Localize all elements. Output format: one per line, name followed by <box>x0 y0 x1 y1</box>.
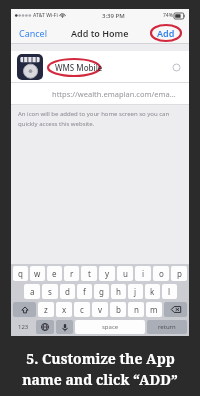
button[interactable]: d <box>60 284 75 299</box>
staticText: p <box>177 268 182 279</box>
button[interactable]: x <box>56 302 72 317</box>
button[interactable]: w <box>30 266 45 281</box>
button[interactable]: l <box>162 284 177 299</box>
staticText: n <box>134 304 139 315</box>
button[interactable]: return <box>147 320 187 334</box>
staticText: a <box>30 286 35 297</box>
button[interactable]: i <box>135 266 151 281</box>
button[interactable]: v <box>92 302 108 317</box>
button[interactable]: h <box>111 284 126 299</box>
button[interactable]: 123 <box>13 320 34 334</box>
staticText: s <box>48 286 52 297</box>
staticText: An icon will be added to your home scree… <box>18 110 170 118</box>
staticText: m <box>150 304 158 315</box>
button[interactable]: e <box>47 266 62 281</box>
button[interactable]: Shift <box>13 302 36 317</box>
button[interactable]: z <box>38 302 54 317</box>
button[interactable]: r <box>64 266 79 281</box>
staticText: b <box>116 304 121 315</box>
staticText: v <box>98 304 103 315</box>
button[interactable]: Clear text <box>169 60 183 74</box>
staticText: w <box>34 268 41 279</box>
staticText: q <box>18 268 23 279</box>
staticText: space <box>102 323 119 331</box>
staticText: Add to Home <box>71 27 129 39</box>
staticText: y <box>105 268 110 279</box>
staticText: Cancel <box>19 27 48 39</box>
staticText: 123 <box>18 323 29 331</box>
button[interactable]: App icon <box>17 54 43 80</box>
staticText: https://wealth.emaplan.com/ema… <box>52 89 176 99</box>
staticText: k <box>150 286 155 297</box>
button[interactable]: j <box>128 284 143 299</box>
staticText: l <box>168 286 171 297</box>
staticText: return <box>158 323 176 331</box>
button[interactable]: Cancel <box>11 22 56 44</box>
button[interactable]: m <box>146 302 162 317</box>
button[interactable]: Emoji <box>36 320 54 334</box>
staticText: o <box>159 268 164 279</box>
staticText: g <box>99 286 104 297</box>
button[interactable]: q <box>13 266 28 281</box>
staticText: d <box>65 286 70 297</box>
button[interactable]: u <box>117 266 133 281</box>
staticText: 5. Customize the App <box>26 349 175 368</box>
button[interactable]: t <box>81 266 97 281</box>
staticText: x <box>62 304 67 315</box>
staticText: e <box>52 268 57 279</box>
button[interactable]: b <box>110 302 126 317</box>
staticText: quickly access this website. <box>18 120 95 128</box>
button[interactable]: c <box>74 302 90 317</box>
button[interactable]: y <box>99 266 115 281</box>
button[interactable]: Dictate <box>56 320 73 334</box>
button[interactable]: Add <box>143 22 189 44</box>
staticText: t <box>88 268 91 279</box>
button[interactable]: a <box>24 284 40 299</box>
button[interactable]: g <box>94 284 109 299</box>
button[interactable]: Backspace <box>164 302 187 317</box>
button[interactable]: k <box>145 284 160 299</box>
button[interactable]: f <box>77 284 92 299</box>
staticText: name and click “ADD” <box>22 370 178 389</box>
staticText: u <box>123 268 128 279</box>
staticText: z <box>44 304 48 315</box>
button[interactable]: s <box>42 284 58 299</box>
staticText: j <box>134 286 137 297</box>
staticText: h <box>116 286 121 297</box>
staticText: 74% <box>163 12 173 19</box>
staticText: 3:39 PM <box>102 12 125 20</box>
button[interactable]: n <box>128 302 144 317</box>
staticText: AT&T Wi-Fi <box>33 12 58 19</box>
button[interactable]: space <box>75 320 145 334</box>
staticText: f <box>83 286 86 297</box>
staticText: i <box>142 268 145 279</box>
staticText: c <box>80 304 84 315</box>
staticText: Add <box>157 27 175 39</box>
staticText: r <box>70 268 74 279</box>
staticText: WMS Mobile <box>55 62 103 73</box>
button[interactable]: p <box>171 266 187 281</box>
button[interactable]: o <box>153 266 169 281</box>
